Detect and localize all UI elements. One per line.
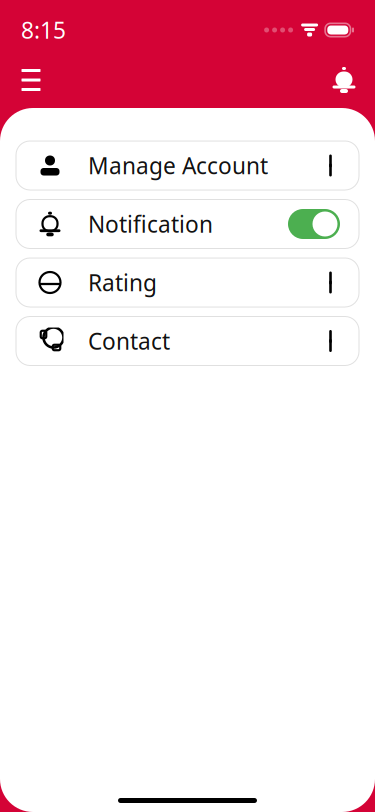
staticText: Contact [88, 326, 170, 356]
staticText: 8:15 [21, 15, 66, 45]
button[interactable]: Contact [16, 316, 359, 365]
staticText: Notification [88, 209, 213, 239]
staticText: Rating [88, 267, 157, 297]
button[interactable]: Manage Account [16, 141, 359, 190]
staticText: Manage Account [88, 150, 268, 180]
button[interactable]: Notifications [322, 58, 366, 102]
button[interactable]: Notification [16, 199, 359, 248]
button[interactable]: Rating [16, 258, 359, 307]
button[interactable]: Menu [9, 58, 53, 102]
